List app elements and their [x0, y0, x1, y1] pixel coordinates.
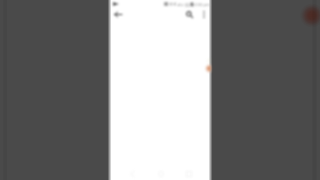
button[interactable]: Navigate up — [112, 8, 124, 20]
staticText: 5:04 pm — [194, 2, 210, 8]
button[interactable]: Search — [183, 8, 195, 20]
staticText: 60% — [185, 2, 194, 8]
button[interactable]: More options — [198, 8, 210, 20]
